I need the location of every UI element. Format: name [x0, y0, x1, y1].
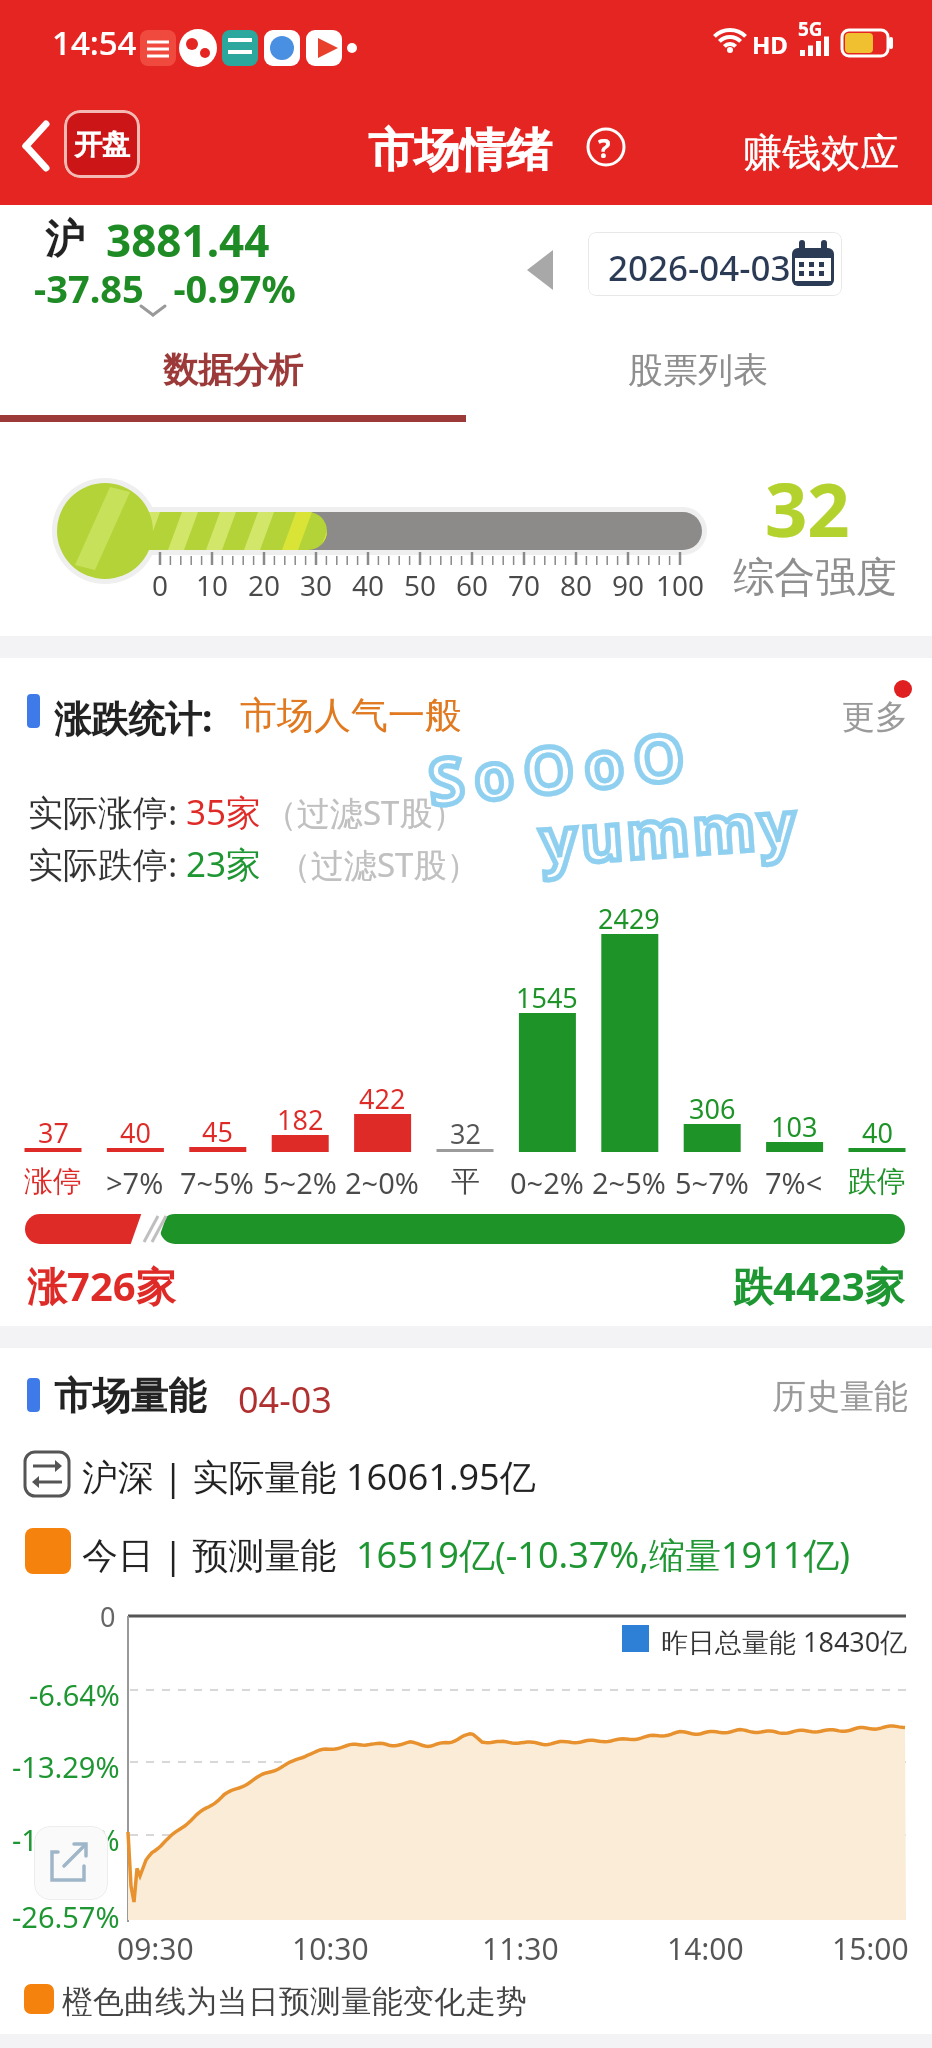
staticText: 2429 — [598, 900, 660, 937]
staticText: -13.29% — [12, 1747, 120, 1786]
staticText: 37 — [38, 1114, 69, 1151]
staticText: 5G — [798, 16, 823, 42]
staticText: -19.93% — [12, 1820, 120, 1859]
button[interactable]: 历史量能 — [772, 1375, 908, 1418]
staticText: 30 — [300, 566, 333, 604]
staticText: 422 — [359, 1080, 406, 1117]
staticText: 10:30 — [292, 1928, 369, 1969]
staticText: 23家 — [186, 840, 262, 888]
staticText: 60 — [456, 566, 489, 604]
staticText: 10 — [196, 566, 229, 604]
staticText: 2026-04-03 — [608, 244, 791, 292]
staticText: 实际跌停: — [28, 840, 178, 888]
staticText: 04-03 — [238, 1375, 332, 1424]
staticText: 今日 | 预测量能 — [82, 1530, 337, 1579]
staticText: 80 — [560, 566, 593, 604]
staticText: 32 — [765, 458, 850, 559]
staticText: 0~2% — [510, 1163, 584, 1202]
button[interactable]: 2026-04-03 — [588, 232, 842, 296]
staticText: 14:00 — [667, 1928, 744, 1969]
staticText: 开盘 — [74, 127, 130, 162]
staticText: 跌4423家 — [733, 1258, 905, 1313]
staticText: 跌停 — [848, 1163, 906, 1200]
staticText: 市场情绪 — [368, 122, 552, 180]
staticText: 40 — [352, 566, 385, 604]
staticText: 35家 — [186, 788, 262, 836]
staticText: 103 — [771, 1108, 818, 1145]
staticText: HD — [752, 28, 788, 61]
staticText: 09:30 — [117, 1928, 194, 1969]
staticText: 7%< — [765, 1163, 823, 1202]
staticText: （过滤ST股） — [278, 842, 480, 887]
staticText: 涨跌统计: — [54, 692, 213, 743]
staticText: 32 — [450, 1115, 481, 1152]
staticText: 90 — [612, 566, 645, 604]
staticText: 11:30 — [482, 1928, 559, 1969]
staticText: 7~5% — [180, 1163, 254, 1202]
staticText: -37.85 -0.97% — [34, 262, 296, 314]
staticText: 40 — [120, 1114, 151, 1151]
button[interactable]: ? — [598, 130, 611, 165]
staticText: SoOoO — [424, 710, 699, 825]
staticText: 16519亿(-10.37%,缩量1911亿) — [356, 1530, 851, 1579]
staticText: 100 — [656, 566, 705, 604]
staticText: >7% — [106, 1163, 164, 1202]
staticText: 40 — [862, 1114, 893, 1151]
staticText: 306 — [689, 1090, 736, 1127]
staticText: 2~0% — [345, 1163, 419, 1202]
staticText: 20 — [248, 566, 281, 604]
staticText: 橙色曲线为当日预测量能变化走势 — [62, 1982, 527, 2021]
staticText: 45 — [202, 1113, 233, 1150]
staticText: -6.64% — [29, 1675, 120, 1714]
staticText: -26.57% — [12, 1897, 120, 1936]
button[interactable] — [34, 1826, 108, 1900]
staticText: 3881.44 — [106, 210, 270, 270]
staticText: 昨日总量能 18430亿 — [661, 1623, 908, 1660]
staticText: 1545 — [516, 979, 578, 1016]
staticText: 0 — [100, 1598, 116, 1635]
staticText: 50 — [404, 566, 437, 604]
staticText: 市场量能 — [54, 1372, 206, 1420]
staticText: 15:00 — [832, 1928, 909, 1969]
staticText: 5~7% — [675, 1163, 749, 1202]
staticText: yummy — [537, 779, 803, 884]
button[interactable]: 股票列表 — [628, 348, 768, 392]
staticText: 市场人气一般 — [240, 692, 462, 739]
button[interactable]: 赚钱效应 — [743, 128, 899, 177]
staticText: （过滤ST股） — [264, 790, 466, 835]
staticText: 涨停 — [24, 1163, 82, 1200]
staticText: 综合强度 — [733, 552, 897, 604]
staticText: 涨726家 — [27, 1258, 176, 1313]
staticText: 2~5% — [592, 1163, 666, 1202]
button[interactable]: 开盘 — [64, 110, 140, 178]
staticText: 沪深 | 实际量能 16061.95亿 — [82, 1452, 536, 1501]
staticText: 沪 — [45, 214, 85, 264]
staticText: 14:54 — [52, 20, 137, 65]
button[interactable] — [14, 112, 66, 178]
staticText: 实际涨停: — [28, 788, 178, 836]
staticText: 0 — [152, 566, 169, 604]
staticText: 182 — [277, 1101, 324, 1138]
button[interactable]: 数据分析 — [163, 348, 303, 392]
button[interactable]: 更多 — [842, 696, 908, 738]
staticText: 5~2% — [263, 1163, 337, 1202]
staticText: 70 — [508, 566, 541, 604]
staticText: 平 — [451, 1163, 480, 1200]
